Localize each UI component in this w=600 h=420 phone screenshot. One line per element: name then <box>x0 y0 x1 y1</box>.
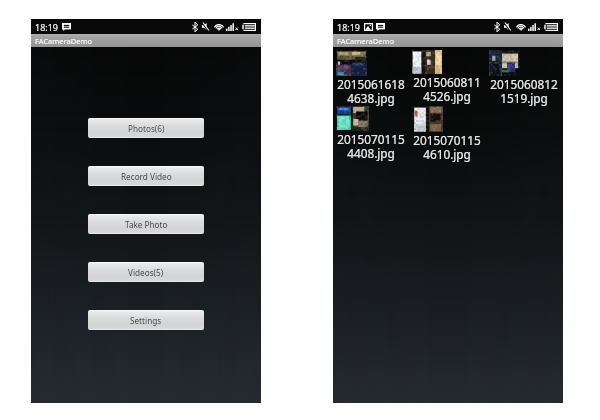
staticText: 20150701154408.jpg <box>336 131 406 161</box>
button[interactable]: Photos(6) <box>88 118 204 138</box>
staticText: Take Photo <box>125 219 168 230</box>
button[interactable]: Take Photo <box>88 214 204 234</box>
staticText: Photos(6) <box>128 123 165 134</box>
staticText: 20150616184638.jpg <box>336 76 406 106</box>
button[interactable]: 20150616184638.jpg <box>333 50 409 106</box>
staticText: Videos(5) <box>128 267 164 278</box>
button[interactable]: Videos(5) <box>88 262 204 282</box>
button[interactable]: 20150701154610.jpg <box>409 106 485 162</box>
button[interactable]: 20150608121519.jpg <box>486 50 562 106</box>
button[interactable]: 20150701154408.jpg <box>333 106 409 161</box>
staticText: 20150701154610.jpg <box>412 132 482 162</box>
staticText: 18:19 <box>35 21 59 33</box>
staticText: Settings <box>130 315 162 326</box>
staticText: 20150608114526.jpg <box>412 74 482 104</box>
staticText: Record Video <box>121 171 172 182</box>
button[interactable]: Record Video <box>88 166 204 186</box>
staticText: FACameraDemo <box>337 36 394 46</box>
staticText: FACameraDemo <box>35 36 92 46</box>
staticText: 20150608121519.jpg <box>489 76 559 106</box>
staticText: 18:19 <box>337 21 361 33</box>
button[interactable]: 20150608114526.jpg <box>409 50 485 104</box>
button[interactable]: Settings <box>88 310 204 330</box>
